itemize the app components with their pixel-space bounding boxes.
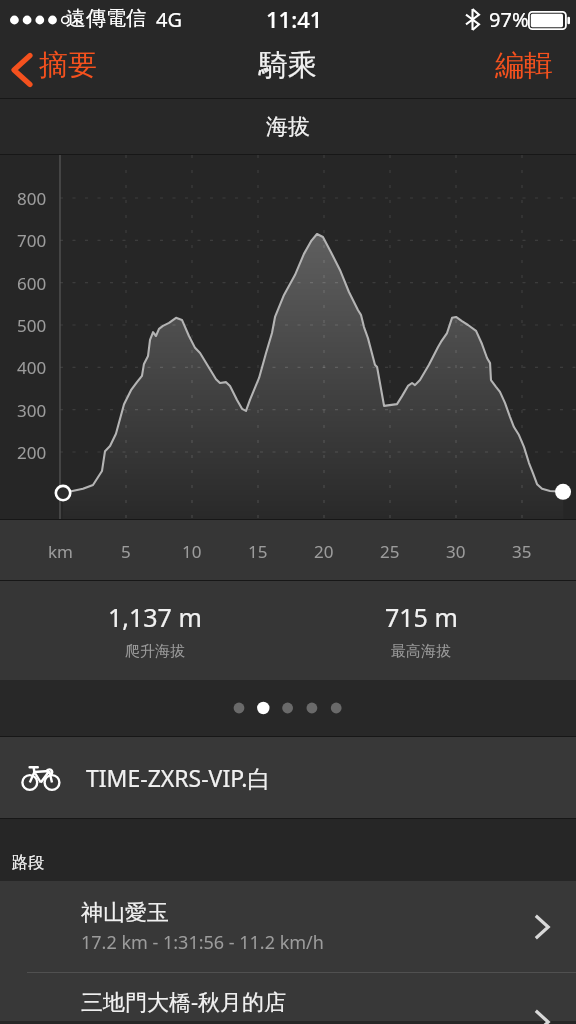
staticText: 11:41 <box>266 4 323 34</box>
other: Back <box>11 53 32 87</box>
staticText: 715 m <box>385 600 458 634</box>
staticText: 30 <box>446 540 466 563</box>
staticText: 300 <box>17 399 47 422</box>
staticText: 17.2 km - 1:31:56 - 11.2 km/h <box>81 930 324 955</box>
staticText: km <box>48 540 73 563</box>
staticText: 路段 <box>12 853 44 873</box>
button[interactable]: Bike <box>0 737 576 818</box>
staticText: 35 <box>512 540 532 563</box>
button[interactable]: 神山愛玉 <box>0 881 576 972</box>
other: Open <box>534 1009 550 1024</box>
staticText: 20 <box>314 540 334 563</box>
other: Open <box>534 914 550 940</box>
staticText: 遠傳電信 <box>66 6 146 31</box>
staticText: 10 <box>182 540 202 563</box>
staticText: 800 <box>17 187 47 210</box>
button[interactable]: 三地門大橋-秋月的店 <box>0 973 576 1021</box>
other: Bike <box>16 760 66 796</box>
staticText: 海拔 <box>266 113 310 141</box>
staticText: 摘要 <box>39 47 97 84</box>
staticText: 400 <box>17 356 47 379</box>
staticText: 1,137 m <box>108 600 202 634</box>
staticText: 4G <box>156 6 182 33</box>
staticText: 25 <box>380 540 400 563</box>
staticText: 神山愛玉 <box>81 899 169 927</box>
button[interactable]: 編輯 <box>469 43 576 96</box>
staticText: 200 <box>17 441 47 464</box>
staticText: 97% <box>489 6 529 33</box>
staticText: 騎乘 <box>259 47 317 84</box>
staticText: TIME-ZXRS-VIP.白 <box>86 762 271 793</box>
staticText: 5 <box>121 540 131 563</box>
staticText: 700 <box>17 229 47 252</box>
staticText: 編輯 <box>495 47 553 84</box>
staticText: 爬升海拔 <box>125 642 185 661</box>
staticText: 600 <box>17 272 47 295</box>
staticText: 500 <box>17 314 47 337</box>
staticText: 三地門大橋-秋月的店 <box>81 986 287 1016</box>
staticText: 15 <box>248 540 268 563</box>
staticText: 最高海拔 <box>391 642 451 661</box>
staticText: 9.6 km - 0:42:18 - 13.6 km/h <box>81 1019 314 1024</box>
button[interactable]: Back <box>0 45 109 94</box>
